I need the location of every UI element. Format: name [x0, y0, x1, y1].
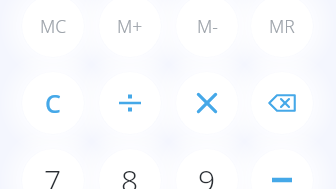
staticText: C: [45, 86, 61, 120]
button[interactable]: M+: [99, 0, 161, 57]
staticText: MC: [40, 14, 67, 38]
button[interactable]: MR: [251, 0, 313, 57]
button[interactable]: Minus: [251, 149, 313, 189]
staticText: M-: [197, 14, 218, 38]
button[interactable]: MC: [22, 0, 84, 57]
button[interactable]: 8: [99, 149, 161, 189]
button[interactable]: C: [22, 72, 84, 134]
staticText: M+: [117, 14, 143, 38]
button[interactable]: 7: [22, 149, 84, 189]
staticText: 8: [121, 160, 139, 189]
button[interactable]: Divide: [99, 72, 161, 134]
staticText: MR: [269, 14, 295, 38]
button[interactable]: Backspace: [251, 72, 313, 134]
staticText: 7: [44, 160, 62, 189]
button[interactable]: 9: [176, 149, 238, 189]
button[interactable]: Multiply: [176, 72, 238, 134]
button[interactable]: M-: [176, 0, 238, 57]
staticText: 9: [198, 160, 216, 189]
